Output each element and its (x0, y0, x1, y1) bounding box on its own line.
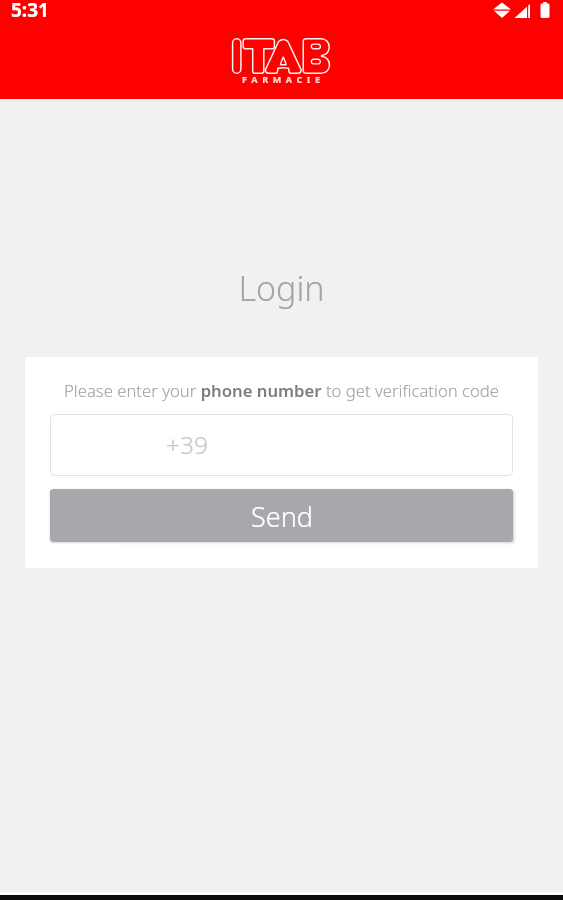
staticText: Send (251, 498, 313, 535)
staticText: Please enter your phone number to get ve… (25, 379, 538, 402)
staticText: FARMACIE (242, 73, 325, 85)
staticText: Login (0, 265, 563, 311)
staticText: +39 (166, 428, 208, 461)
button[interactable]: +39 (50, 414, 513, 476)
other: Status icons (492, 2, 552, 19)
button[interactable]: Send (50, 489, 513, 542)
staticText: 5:31 (11, 0, 49, 23)
